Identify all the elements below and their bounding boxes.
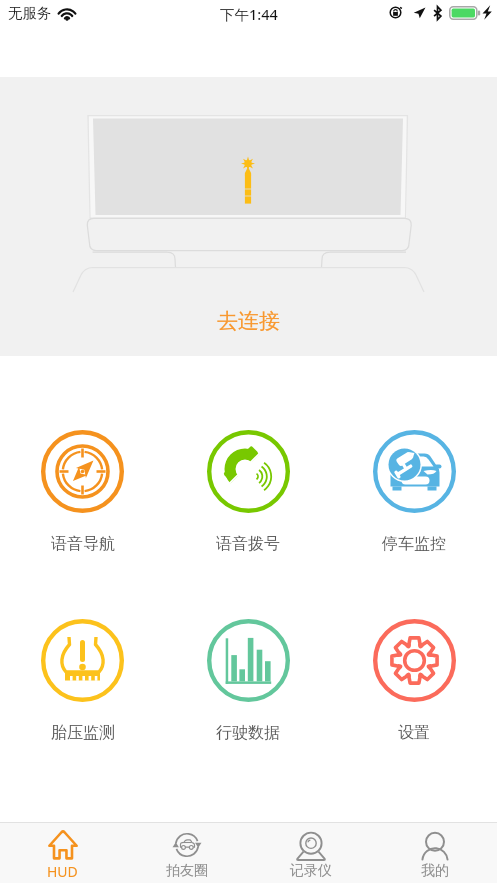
staticText: 我的 (421, 862, 449, 880)
staticText: 语音拨号 (216, 534, 280, 554)
staticText: 停车监控 (382, 534, 446, 554)
button[interactable]: 停车监控 (331, 430, 497, 554)
staticText: 拍友圈 (166, 862, 208, 880)
staticText: 记录仪 (290, 862, 332, 880)
staticText: HUD (47, 862, 78, 881)
staticText: 行驶数据 (216, 723, 280, 743)
button[interactable]: 语音导航 (0, 430, 165, 554)
staticText: 语音导航 (51, 534, 115, 554)
button[interactable]: 去连接 (207, 305, 290, 337)
button[interactable]: HUD (0, 823, 125, 883)
button[interactable]: 记录仪 (249, 823, 373, 883)
staticText: 设置 (398, 723, 430, 743)
staticText: 下午1:44 (220, 4, 278, 24)
button[interactable]: 设置 (331, 619, 497, 743)
staticText: 无服务 (8, 4, 52, 22)
button[interactable]: 拍友圈 (125, 823, 249, 883)
button[interactable]: 我的 (373, 823, 497, 883)
button[interactable]: 胎压监测 (0, 619, 165, 743)
button[interactable]: 行驶数据 (165, 619, 331, 743)
staticText: 胎压监测 (51, 723, 115, 743)
button[interactable]: 语音拨号 (165, 430, 331, 554)
staticText: 去连接 (217, 308, 280, 334)
